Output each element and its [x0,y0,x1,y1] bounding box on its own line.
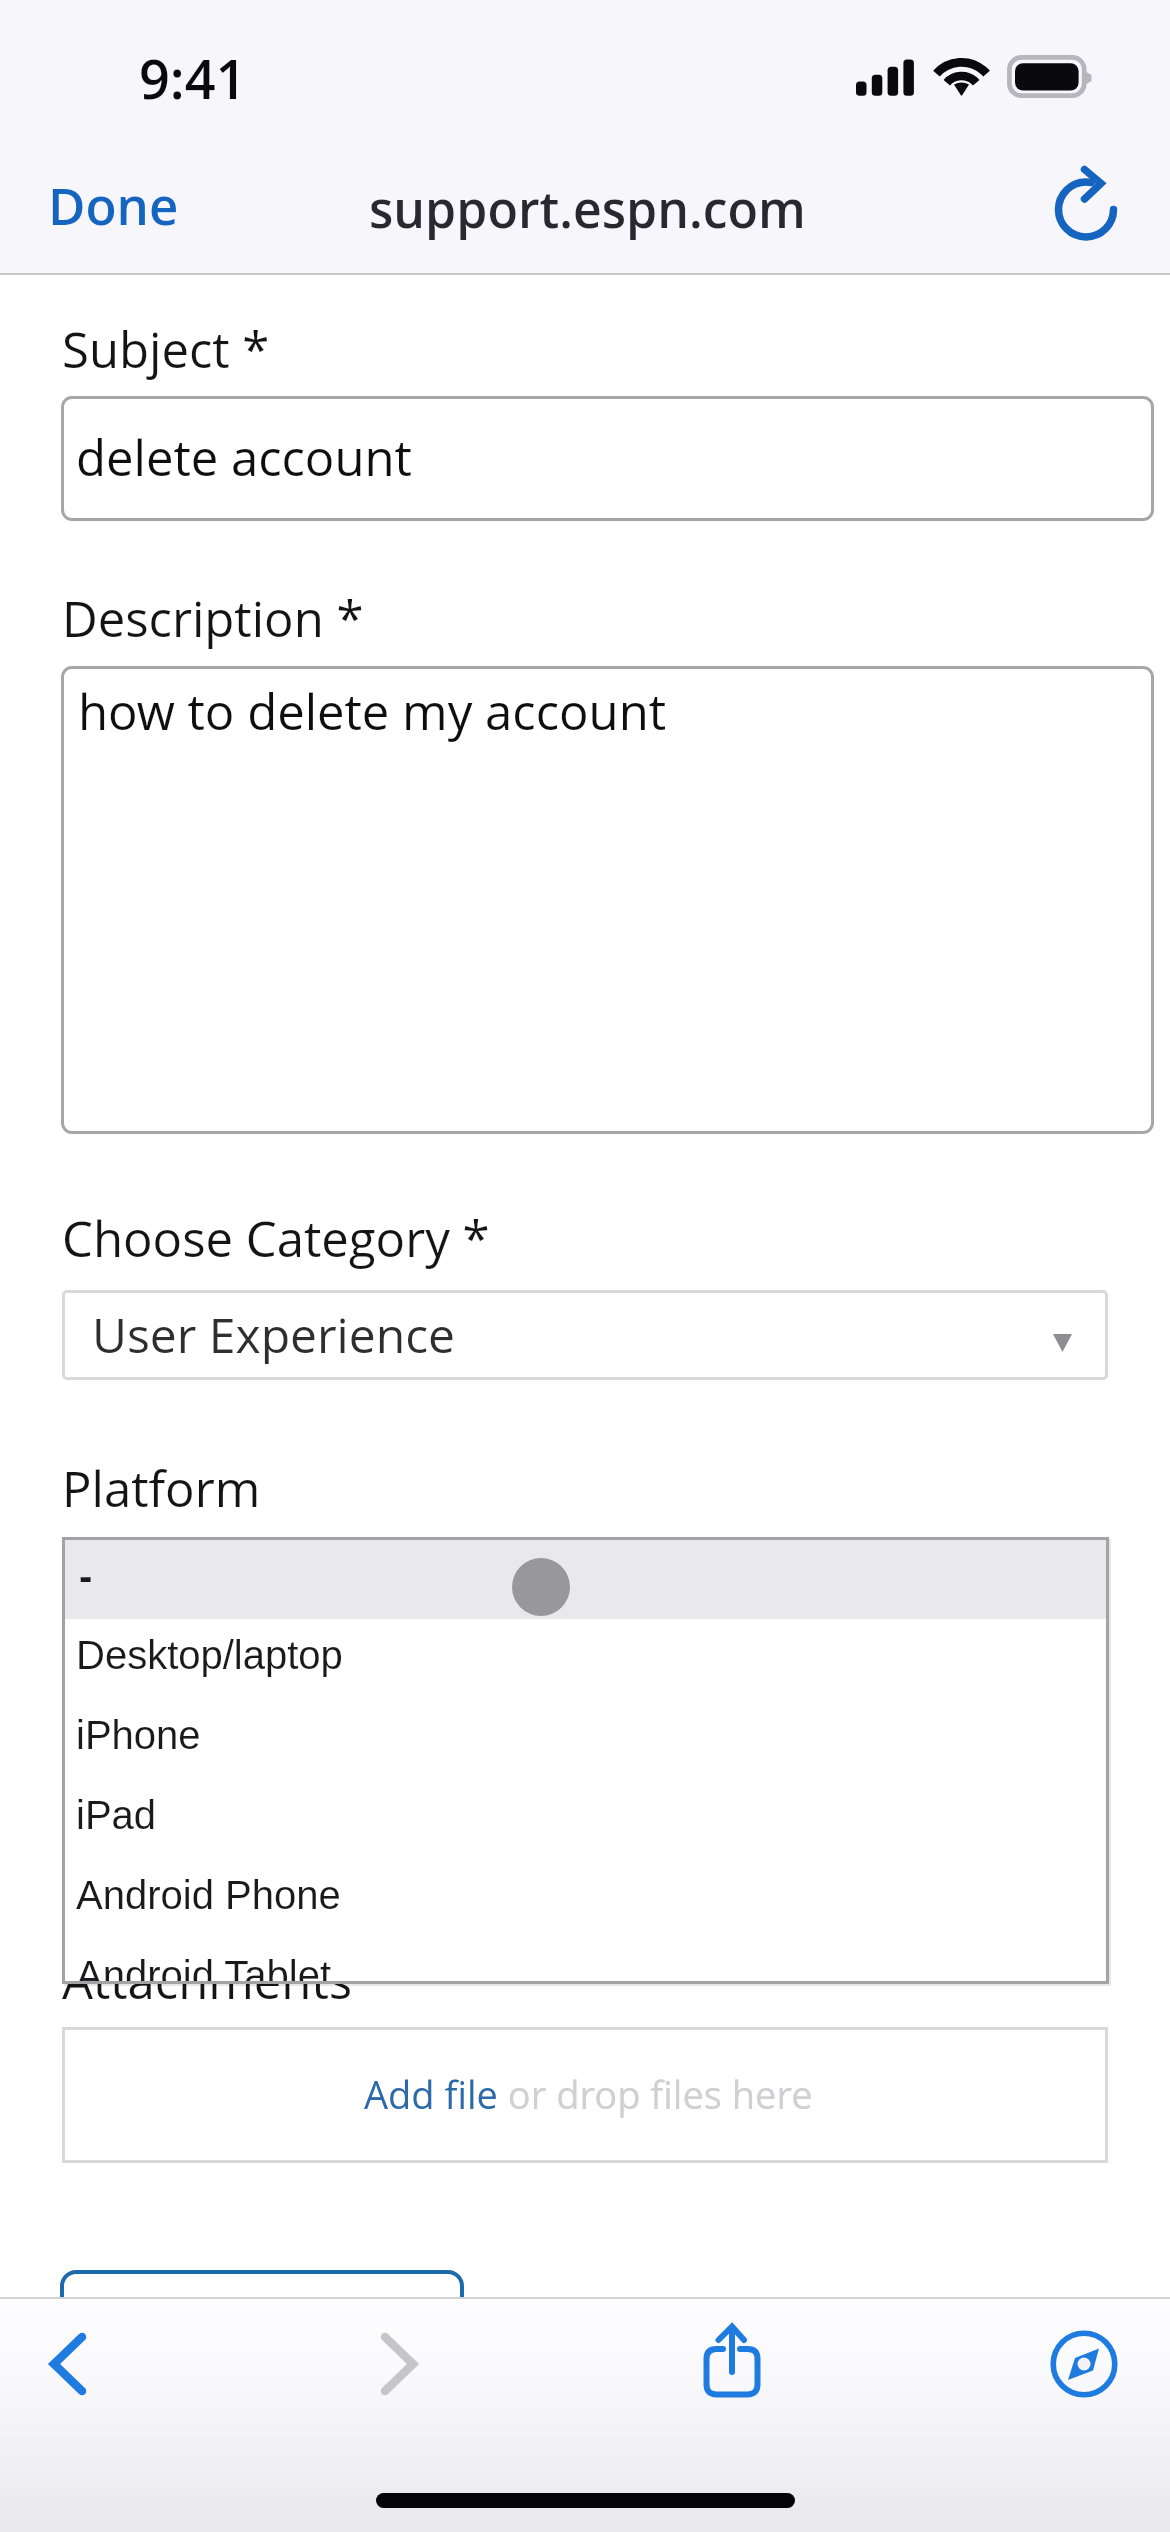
staticText: Description * [62,585,364,652]
button[interactable]: iPhone [62,1699,1109,1779]
staticText: iPhone [76,1713,201,1758]
button[interactable]: Forward [339,2304,459,2424]
staticText: Platform [62,1455,261,1522]
staticText: - [79,1554,93,1599]
button[interactable]: Share [672,2304,792,2424]
staticText: how to delete my account [78,678,667,745]
staticText: support.espn.com [369,175,806,243]
staticText: or drop files here [498,2068,813,2120]
button[interactable]: Android Tablet [62,1939,1109,1984]
button[interactable]: Safari [1024,2304,1144,2424]
staticText: delete account [76,424,412,491]
staticText: User Experience [92,1302,455,1367]
button[interactable]: Reload page [1040,152,1132,244]
button[interactable]: Desktop/laptop [62,1619,1109,1699]
staticText: Choose Category * [62,1205,490,1272]
staticText: Subject * [62,316,270,383]
button[interactable]: delete account [61,396,1154,521]
button[interactable]: Add file [62,2027,1108,2163]
staticText: Desktop/laptop [76,1633,343,1678]
staticText: Done [48,170,179,239]
staticText: Attachments [62,1947,353,2014]
button[interactable]: iPad [62,1779,1109,1859]
button[interactable]: Back [8,2304,128,2424]
button[interactable]: how to delete my account [61,666,1154,1134]
button[interactable]: User Experience [62,1290,1108,1380]
staticText: Android Tablet [76,1953,331,1984]
button[interactable]: - [62,1537,1109,1619]
button[interactable]: Done [26,146,201,263]
button[interactable] [60,2270,464,2380]
staticText: Add file [364,2068,498,2120]
button[interactable]: Android Phone [62,1859,1109,1939]
staticText: iPad [76,1793,157,1838]
staticText: Android Phone [76,1873,341,1918]
staticText: 9:41 [139,41,247,115]
